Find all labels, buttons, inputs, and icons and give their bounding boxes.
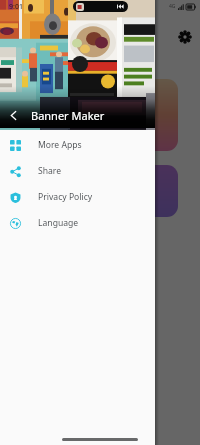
staticText: Banner Maker [31,108,105,123]
staticText: More Apps [38,139,82,151]
button[interactable]: Back [0,102,26,128]
staticText: Poster [31,196,65,211]
staticText: 4G [169,3,176,10]
button[interactable]: Share [0,158,155,184]
button[interactable]: Language [0,210,155,236]
button[interactable]: More Apps [0,132,155,158]
staticText: 9:01 [9,2,23,12]
button[interactable]: Poster [22,165,178,217]
button[interactable]: Privacy Policy [0,184,155,210]
button[interactable]: Banner [22,79,178,151]
button[interactable]: Settings [173,25,197,49]
staticText: Banner [31,130,70,145]
staticText: Language [38,217,79,229]
staticText: Share [38,165,62,177]
staticText: Privacy Policy [38,191,93,203]
